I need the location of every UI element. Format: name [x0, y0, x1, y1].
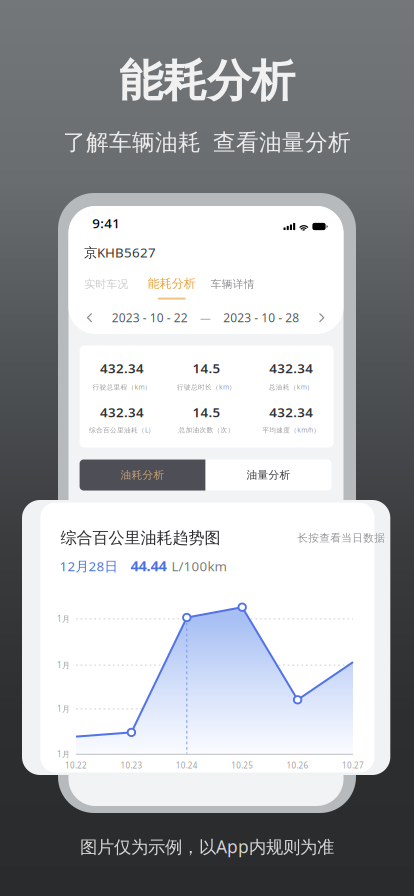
staticText: 京KHB5627	[84, 243, 156, 261]
staticText: 10.26	[287, 760, 309, 771]
staticText: 车辆详情	[211, 277, 255, 291]
staticText: L/100km	[171, 557, 226, 575]
staticText: 长按查看当日数据	[297, 531, 385, 544]
button[interactable]: Previous week	[80, 308, 100, 328]
staticText: 10.25	[231, 760, 253, 771]
staticText: 9:41	[92, 214, 120, 232]
staticText: 14.5	[193, 359, 221, 377]
staticText: 总油耗（km）	[269, 383, 314, 391]
staticText: 432.34	[269, 359, 313, 377]
staticText: —	[200, 311, 211, 325]
button[interactable]: 能耗分析	[147, 277, 197, 300]
staticText: 12月28日	[59, 557, 117, 575]
staticText: 平均速度（km/h）	[262, 426, 320, 434]
button[interactable]: Next week	[312, 308, 332, 328]
staticText: 1月	[57, 660, 70, 670]
staticText: 行驶总时长（km）	[177, 383, 236, 391]
staticText: 查看油量分析	[213, 128, 351, 156]
staticText: 10.27	[342, 760, 364, 771]
staticText: 44.44	[130, 556, 166, 575]
staticText: 能耗分析	[148, 276, 196, 291]
staticText: 行驶总里程（km）	[92, 383, 151, 391]
staticText: 432.34	[269, 403, 313, 421]
staticText: 了解车辆油耗	[63, 128, 201, 156]
staticText: 2023 - 10 - 22	[112, 310, 188, 326]
staticText: 油量分析	[247, 468, 291, 481]
staticText: 2023 - 10 - 28	[223, 310, 299, 326]
staticText: 432.34	[100, 403, 144, 421]
staticText: 总加油次数（次）	[179, 426, 235, 434]
staticText: 10.22	[65, 760, 87, 771]
button[interactable]: 油耗分析	[80, 459, 206, 490]
button[interactable]: 车辆详情	[210, 278, 255, 291]
button[interactable]: 实时车况	[84, 278, 129, 291]
button[interactable]: 油量分析	[206, 459, 332, 490]
staticText: 14.5	[193, 403, 221, 421]
staticText: 图片仅为示例，以App内规则为准	[80, 835, 334, 858]
staticText: 油耗分析	[121, 468, 165, 481]
staticText: 432.34	[100, 359, 144, 377]
staticText: 能耗分析	[119, 54, 295, 108]
staticText: 10.23	[120, 760, 142, 771]
staticText: 10.24	[176, 760, 198, 771]
staticText: 实时车况	[84, 277, 128, 291]
staticText: 综合百公里油耗（L）	[89, 426, 155, 434]
staticText: 1月	[57, 703, 70, 714]
staticText: 1月	[57, 749, 70, 759]
staticText: 综合百公里油耗趋势图	[60, 528, 220, 548]
staticText: 1月	[57, 613, 70, 624]
